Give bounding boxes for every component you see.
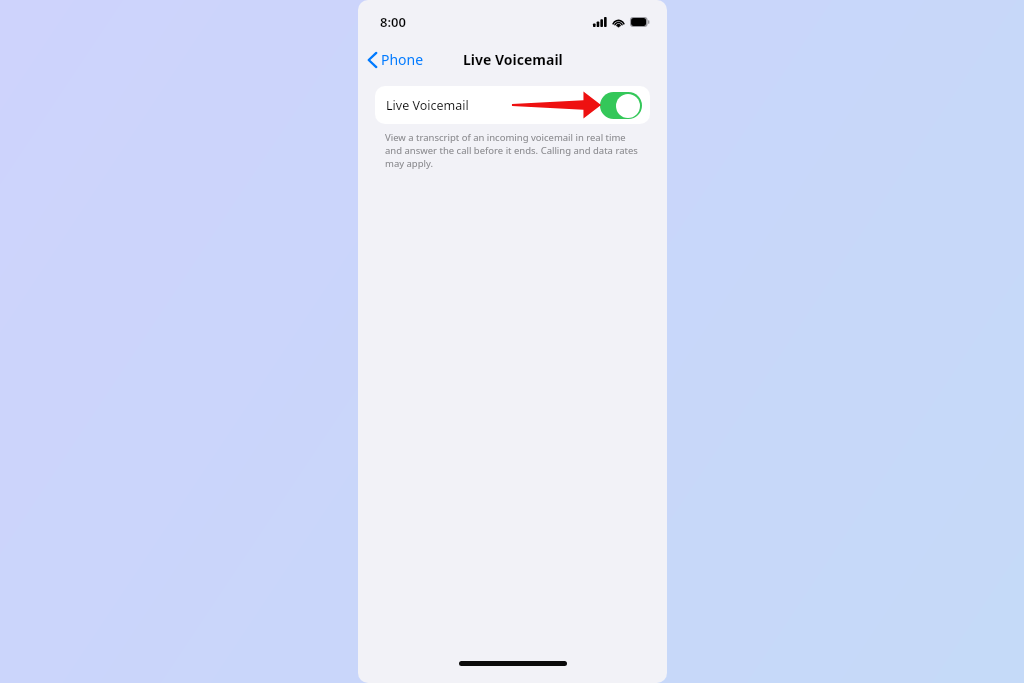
staticText: View a transcript of an incoming voicema…: [385, 131, 645, 170]
staticText: Live Voicemail: [463, 50, 563, 69]
button[interactable]: Phone: [358, 46, 432, 73]
button[interactable]: Live Voicemail: [375, 86, 650, 124]
staticText: Phone: [381, 50, 424, 69]
staticText: 8:00: [380, 13, 406, 31]
staticText: Live Voicemail: [386, 97, 469, 114]
button[interactable]: Live Voicemail toggle, on: [600, 92, 642, 119]
other: Annotation arrow pointing at toggle: [375, 86, 650, 124]
